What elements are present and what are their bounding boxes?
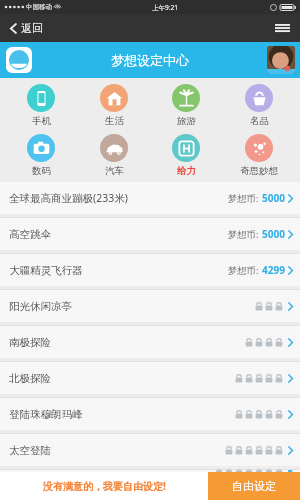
staticText: 登陆珠穆朗玛峰	[9, 408, 83, 421]
button[interactable]: 高空跳伞	[0, 218, 300, 250]
staticText: 梦想币:	[227, 192, 259, 205]
button[interactable]: 北极探险	[0, 362, 300, 394]
button[interactable]: 给力	[155, 132, 217, 179]
button[interactable]: 阳光休闲凉亭	[0, 290, 300, 322]
staticText: 全球最高商业蹦极(233米)	[9, 191, 128, 205]
staticText: 梦想币:	[227, 228, 259, 241]
staticText: 北极探险	[9, 372, 51, 385]
staticText: 给力	[177, 165, 196, 177]
staticText: 手机	[32, 115, 51, 127]
button[interactable]: 没有满意的，我要自由设定!	[0, 472, 208, 500]
staticText: 太空登陆	[9, 444, 51, 457]
staticText: 梦想币:	[227, 264, 259, 277]
staticText: 奇思妙想	[240, 165, 278, 177]
button[interactable]: 生活	[83, 82, 145, 129]
staticText: 5000	[262, 227, 285, 241]
staticText: 生活	[105, 115, 124, 127]
staticText: 自由设定	[232, 479, 276, 493]
button[interactable]: Profile	[267, 46, 295, 74]
staticText: 没有满意的，我要自由设定!	[43, 479, 166, 493]
staticText: 高空跳伞	[9, 228, 51, 241]
staticText: 旅游	[177, 115, 196, 127]
button[interactable]: 汽车	[83, 132, 145, 179]
button[interactable]: 南极探险	[0, 326, 300, 358]
button[interactable]: 旅游	[155, 82, 217, 129]
button[interactable]: 返回	[0, 17, 53, 39]
button[interactable]: 名品	[228, 82, 290, 129]
staticText: 5000	[262, 191, 285, 205]
staticText: 数码	[32, 165, 51, 177]
button[interactable]: 数码	[10, 132, 72, 179]
button[interactable]: 登陆珠穆朗玛峰	[0, 398, 300, 430]
button[interactable]: 手机	[10, 82, 72, 129]
staticText: 返回	[21, 21, 43, 35]
button[interactable]: 香港迪士尼+5日游	[0, 470, 300, 472]
button[interactable]: 奇思妙想	[228, 132, 290, 179]
button[interactable]: 全球最高商业蹦极(233米)	[0, 182, 300, 214]
button[interactable]: 太空登陆	[0, 434, 300, 466]
staticText: 4299	[262, 263, 285, 277]
staticText: 中国移动	[26, 3, 52, 11]
staticText: 阳光休闲凉亭	[9, 300, 72, 313]
staticText: 名品	[250, 115, 269, 127]
staticText: 梦想设定中心	[111, 52, 189, 68]
button[interactable]: 大疆精灵飞行器	[0, 254, 300, 286]
button[interactable]: 自由设定	[208, 472, 300, 500]
staticText: 汽车	[105, 165, 124, 177]
button[interactable]: Logo	[6, 47, 32, 73]
staticText: 上午9:21	[152, 3, 178, 12]
button[interactable]: Menu	[265, 14, 300, 42]
staticText: 大疆精灵飞行器	[9, 264, 83, 277]
staticText: 南极探险	[9, 336, 51, 349]
